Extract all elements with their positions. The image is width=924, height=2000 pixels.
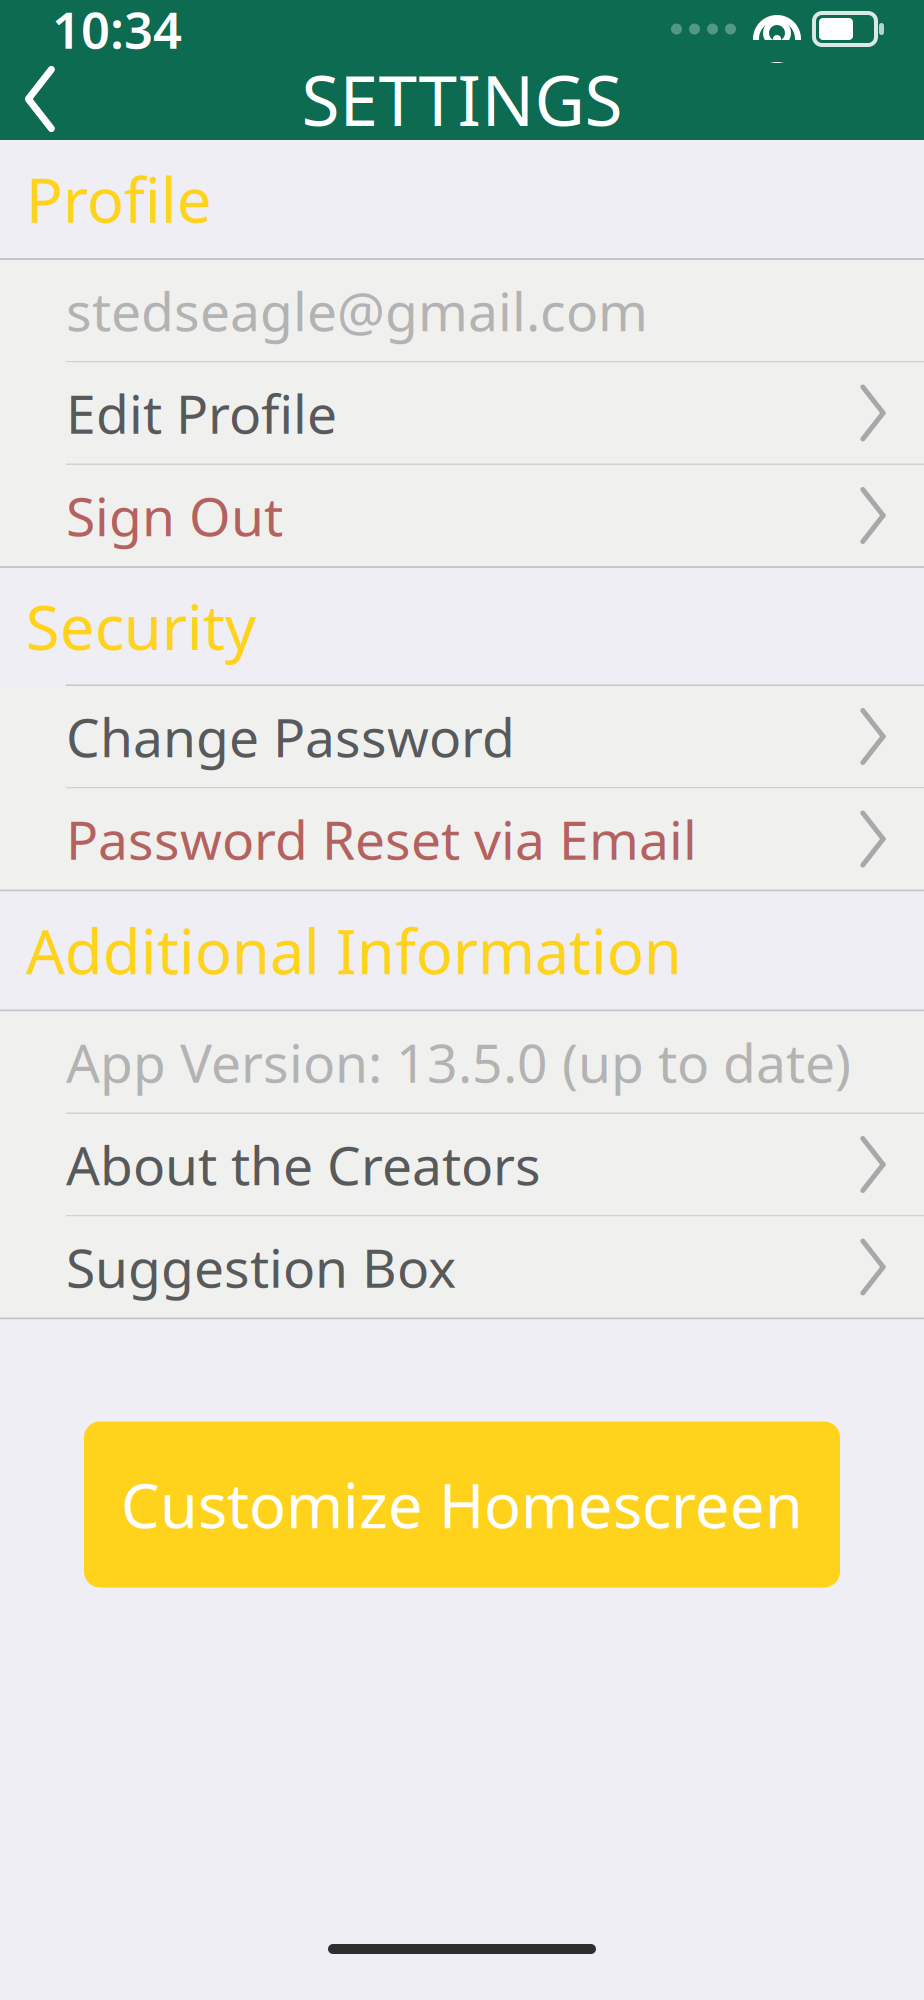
button[interactable]: Sign Out bbox=[0, 465, 924, 566]
staticText: SETTINGS bbox=[301, 53, 622, 145]
staticText: stedseagle@gmail.com bbox=[66, 275, 648, 346]
button[interactable]: Change Password bbox=[0, 686, 924, 787]
staticText: 10:34 bbox=[52, 0, 182, 63]
staticText: Change Password bbox=[66, 701, 515, 772]
staticText: App Version: 13.5.0 (up to date) bbox=[66, 1027, 851, 1097]
button[interactable]: Suggestion Box bbox=[0, 1216, 924, 1317]
staticText: Additional Information bbox=[26, 910, 682, 991]
staticText: Sign Out bbox=[66, 480, 283, 551]
staticText: Security bbox=[26, 585, 256, 667]
staticText: Customize Homescreen bbox=[121, 1464, 803, 1545]
button[interactable]: About the Creators bbox=[0, 1114, 924, 1215]
staticText: Edit Profile bbox=[66, 378, 337, 448]
staticText: Profile bbox=[26, 158, 212, 240]
button[interactable]: Edit Profile bbox=[0, 362, 924, 463]
button[interactable]: Back bbox=[0, 58, 78, 140]
button[interactable]: Password Reset via Email bbox=[0, 788, 924, 889]
button[interactable]: Customize Homescreen bbox=[84, 1421, 840, 1587]
staticText: Suggestion Box bbox=[66, 1232, 456, 1302]
staticText: Password Reset via Email bbox=[66, 804, 697, 874]
staticText: About the Creators bbox=[66, 1129, 541, 1200]
